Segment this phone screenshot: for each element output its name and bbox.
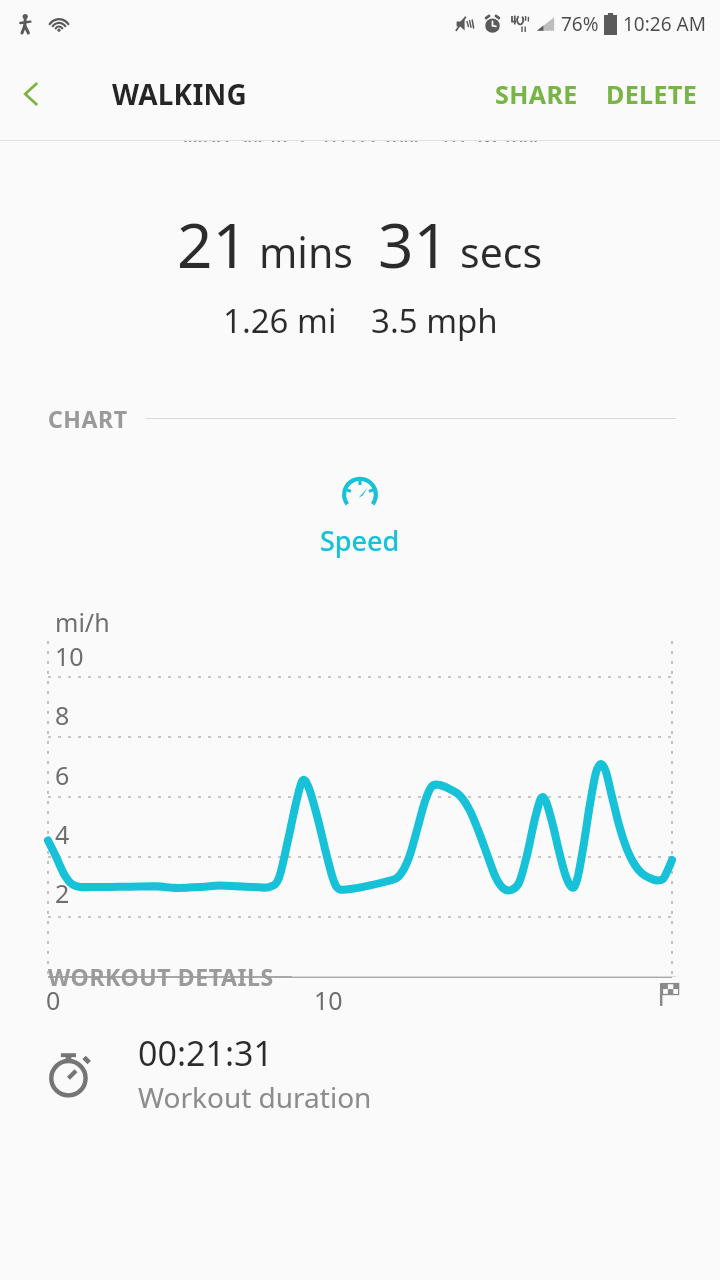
staticText: 8 [55,698,70,732]
staticText: 4 [55,817,70,851]
staticText: WORKOUT DETAILS [48,961,274,992]
staticText: Speed [320,522,400,559]
staticText: 10 [314,983,343,1017]
staticText: 31 [378,202,449,286]
staticText: secs [460,224,543,280]
staticText: 3.5 mph [371,298,498,343]
staticText: 21 [177,202,248,286]
button[interactable]: Back [0,62,64,126]
button[interactable]: DELETE [592,65,712,123]
staticText: 0 [46,983,61,1017]
staticText: 2 [55,876,70,910]
staticText: 10:26 AM [623,11,706,37]
staticText: 1.26 mi [223,298,337,343]
staticText: CHART [48,403,128,434]
staticText: WALKING [112,75,247,113]
staticText: 00:21:31 [138,1030,273,1076]
button[interactable]: Speed [0,470,720,559]
staticText: mi/h [55,605,110,639]
button[interactable]: SHARE [481,65,592,123]
staticText: DELETE [606,77,698,111]
button[interactable]: 00:21:31 [0,1026,720,1120]
staticText: 76% [561,11,599,37]
staticText: SHARE [495,77,578,111]
staticText: 6 [55,758,70,792]
staticText: Wed, May 2, 10:02 AM - 10:26 AM [182,141,539,142]
staticText: 10 [55,639,84,673]
staticText: Workout duration [138,1078,372,1116]
staticText: mins [259,224,353,280]
